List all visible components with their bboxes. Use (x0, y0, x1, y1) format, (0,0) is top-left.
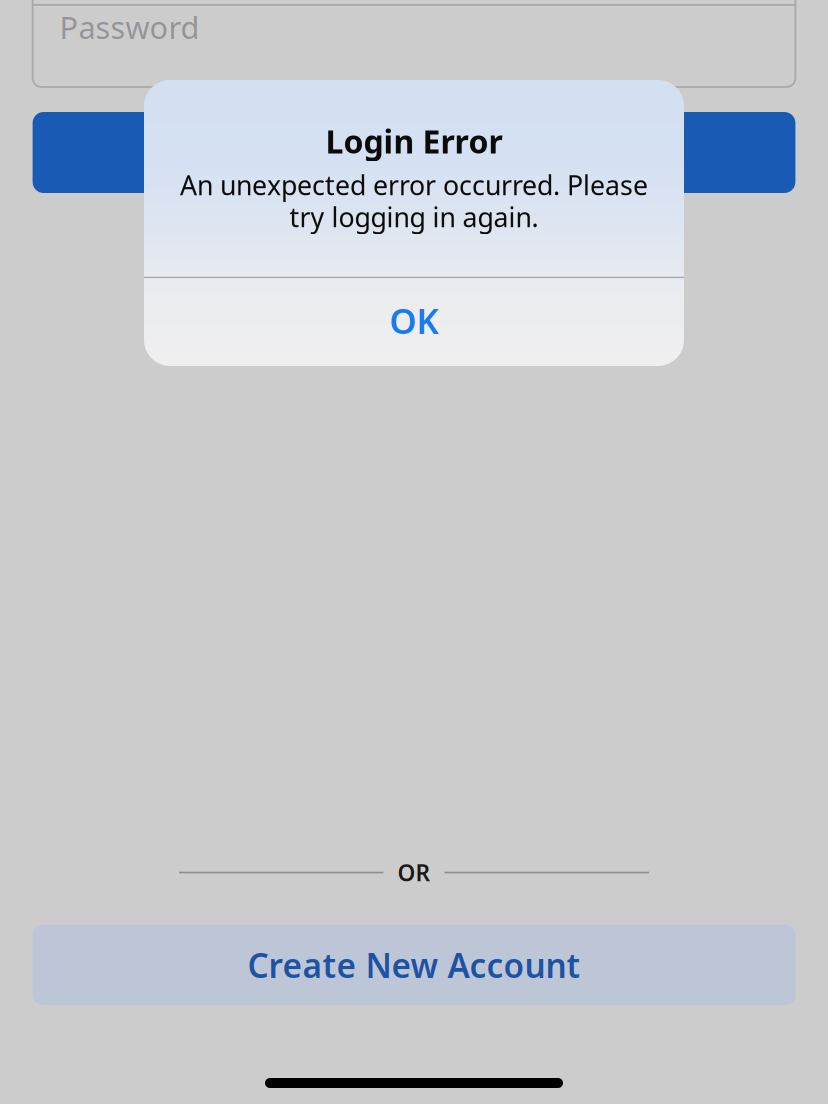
staticText: Login Error (325, 120, 502, 162)
staticText: OK (389, 297, 438, 343)
staticText: Create New Account (247, 943, 580, 987)
button[interactable]: OK (144, 276, 684, 364)
staticText: try logging in again. (289, 199, 538, 234)
staticText: OR (397, 857, 430, 887)
button[interactable]: Create New Account (33, 925, 795, 1005)
button[interactable]: Sign In (33, 112, 795, 193)
staticText: Password (60, 7, 200, 47)
button[interactable]: Password (33, 0, 795, 87)
staticText: An unexpected error occurred. Please (180, 167, 648, 202)
